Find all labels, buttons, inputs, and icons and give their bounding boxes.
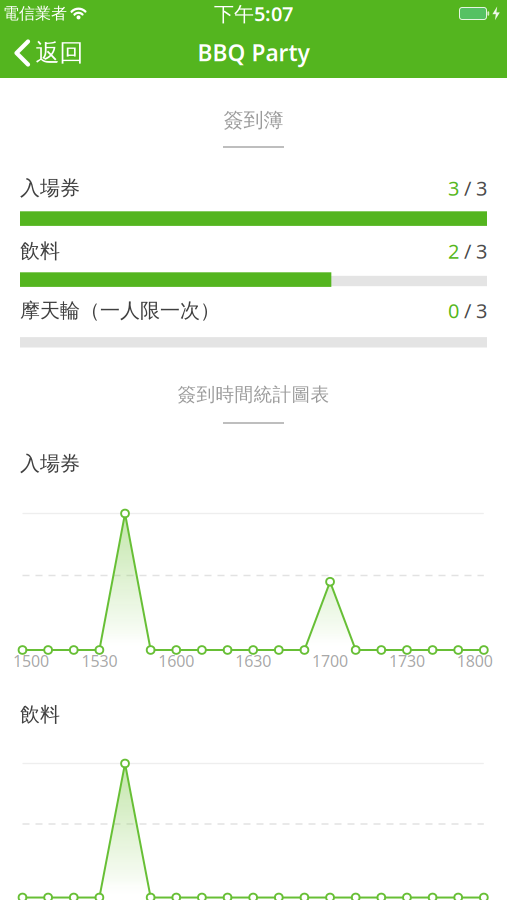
staticText: 簽到簿 — [223, 108, 283, 132]
staticText: 飲料 — [20, 702, 60, 727]
staticText: 1730 — [389, 650, 425, 671]
staticText: 入場券 — [20, 176, 80, 200]
staticText: 下午5:07 — [214, 0, 293, 27]
staticText: 摩天輪（一人限一次） — [20, 298, 220, 323]
staticText: 1800 — [457, 650, 493, 671]
staticText: 2 — [448, 238, 459, 264]
staticText: 1700 — [312, 650, 348, 671]
staticText: 簽到時間統計圖表 — [177, 383, 329, 406]
staticText: BBQ Party — [197, 37, 309, 67]
staticText: 3 — [448, 175, 459, 201]
staticText: 0 — [448, 297, 459, 324]
staticText: 1500 — [13, 650, 49, 671]
staticText: 電信業者 — [3, 4, 67, 23]
staticText: 飲料 — [20, 239, 60, 263]
staticText: 1630 — [235, 650, 271, 671]
staticText: / 3 — [459, 175, 487, 201]
staticText: / 3 — [459, 238, 487, 264]
staticText: 1600 — [158, 650, 194, 671]
staticText: 1530 — [81, 650, 117, 671]
staticText: 返回 — [35, 38, 83, 68]
staticText: / 3 — [459, 297, 487, 324]
button[interactable]: 返回 — [11, 35, 83, 71]
staticText: 入場券 — [20, 451, 80, 476]
